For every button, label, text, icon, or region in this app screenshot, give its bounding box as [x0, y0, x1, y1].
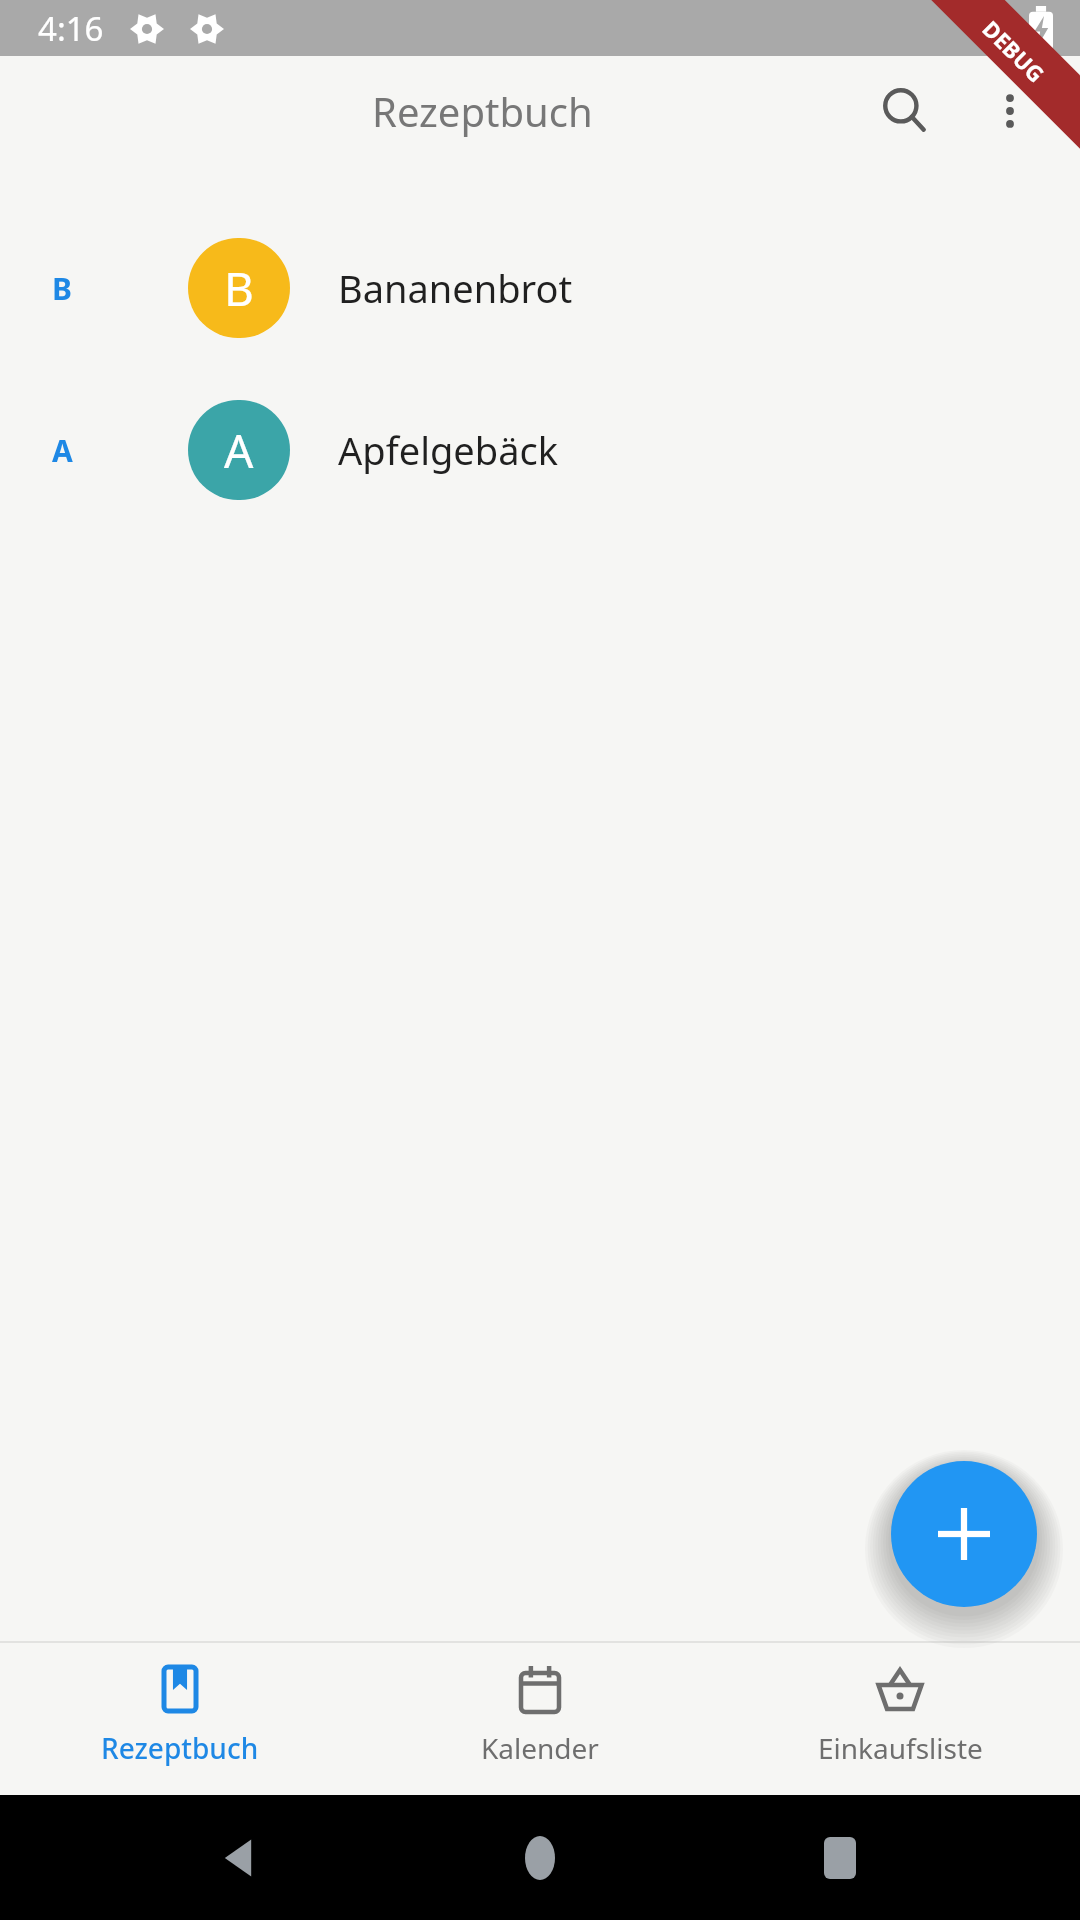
staticText: DEBUG	[976, 13, 1051, 88]
button[interactable]: Search	[850, 56, 960, 166]
button[interactable]: A	[0, 400, 1080, 500]
button[interactable]: Einkaufsliste	[720, 1643, 1080, 1795]
staticText: Kalender	[481, 1729, 599, 1767]
button[interactable]: More options	[960, 61, 1060, 161]
staticText: Bananenbrot	[338, 262, 573, 314]
staticText: B	[52, 268, 72, 309]
button[interactable]: Kalender	[360, 1643, 720, 1795]
staticText: A	[52, 430, 73, 471]
staticText: B	[224, 257, 254, 320]
button[interactable]: Add recipe	[891, 1461, 1037, 1607]
staticText: Einkaufsliste	[818, 1729, 983, 1767]
staticText: Rezeptbuch	[372, 84, 593, 138]
button[interactable]: Home	[490, 1808, 590, 1908]
button[interactable]: Recent apps	[790, 1808, 890, 1908]
button[interactable]: Back	[190, 1808, 290, 1908]
staticText: 4:16	[38, 6, 104, 51]
staticText: A	[224, 419, 254, 482]
button[interactable]: B	[0, 238, 1080, 338]
staticText: Rezeptbuch	[101, 1729, 259, 1767]
button[interactable]: Rezeptbuch	[0, 1643, 360, 1795]
staticText: Apfelgebäck	[338, 424, 558, 476]
